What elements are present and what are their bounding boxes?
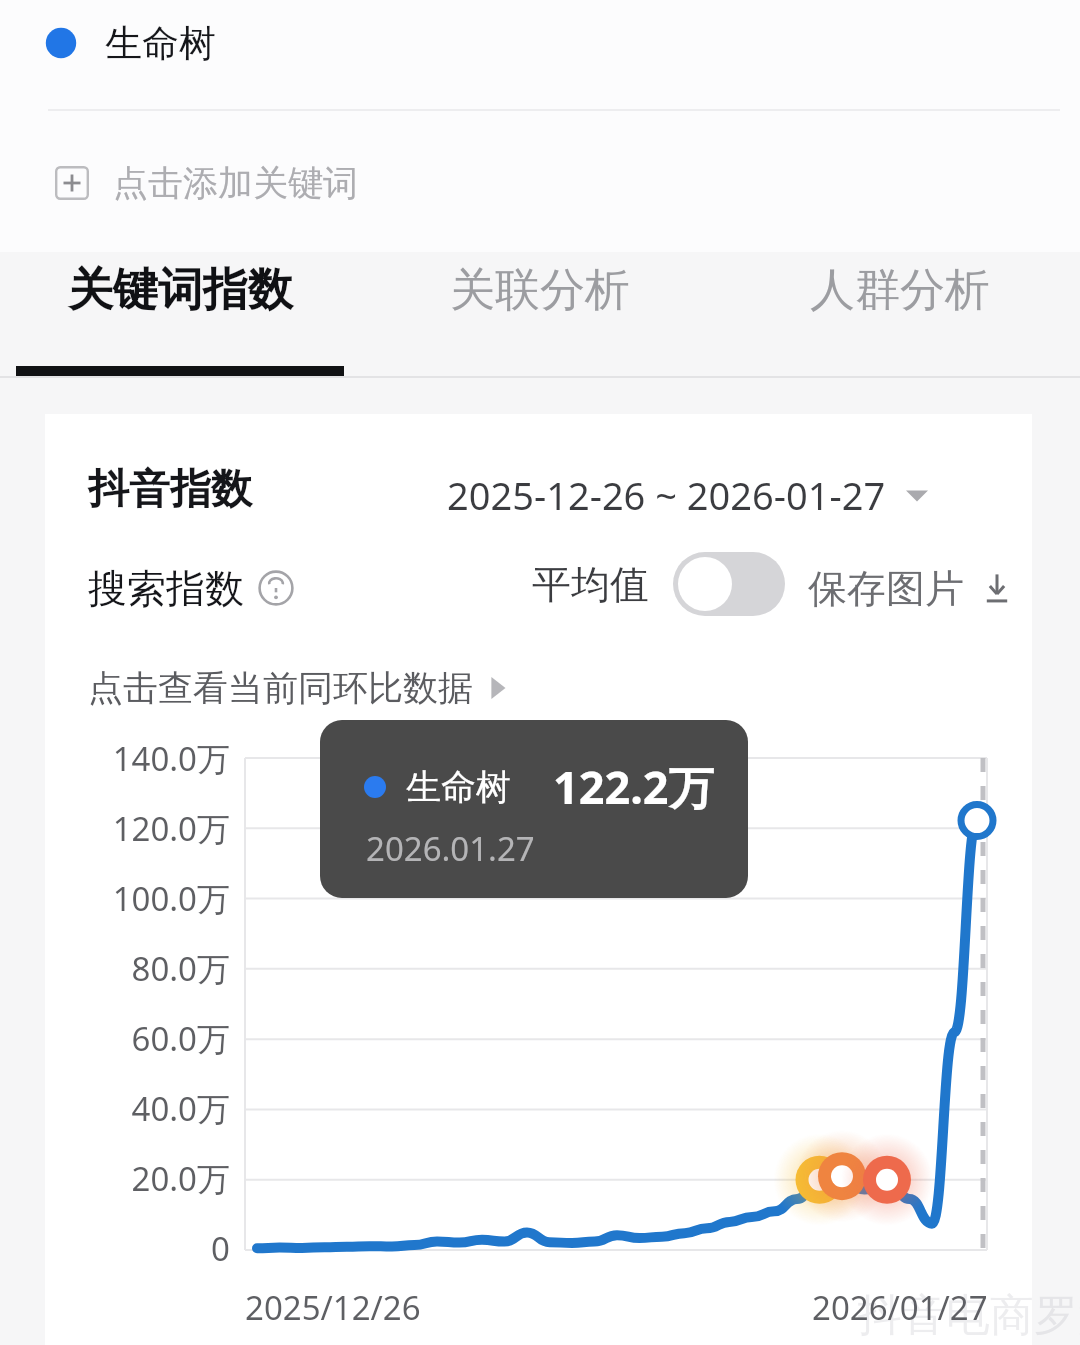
staticText: 关键词指数 — [68, 262, 293, 319]
staticText: 抖音指数 — [88, 464, 252, 516]
other: 保存图片 — [980, 571, 1014, 605]
staticText: 关联分析 — [450, 262, 630, 319]
staticText: 60.0万 — [131, 1016, 230, 1061]
button[interactable]: 保存图片 — [808, 558, 1014, 618]
button[interactable]: 点击添加关键词 — [55, 150, 358, 216]
staticText: 40.0万 — [131, 1086, 230, 1131]
staticText: 保存图片 — [808, 564, 964, 613]
staticText: 生命树 — [406, 765, 511, 809]
button[interactable]: 关键词指数 — [0, 262, 360, 319]
staticText: 80.0万 — [131, 946, 230, 991]
staticText: 0 — [211, 1226, 230, 1271]
staticText: 人群分析 — [810, 262, 990, 319]
staticText: 抖音电商罗盘 — [858, 1288, 1080, 1343]
button[interactable]: 人群分析 — [720, 262, 1080, 319]
staticText: 120.0万 — [112, 806, 230, 851]
button[interactable]: 2025-12-26 ~ 2026-01-27 — [447, 465, 928, 525]
other: 帮助 — [258, 570, 294, 606]
staticText: 2026.01.27 — [366, 826, 535, 871]
staticText: 2026/01/27 — [812, 1285, 988, 1330]
staticText: 平均值 — [532, 560, 649, 609]
button[interactable]: 生命树 — [45, 12, 216, 74]
staticText: 122.2万 — [553, 756, 714, 817]
staticText: 点击添加关键词 — [113, 161, 358, 205]
staticText: 生命树 — [105, 20, 216, 67]
staticText: 2025/12/26 — [245, 1285, 421, 1330]
staticText: 100.0万 — [112, 876, 230, 921]
staticText: 140.0万 — [112, 736, 230, 781]
staticText: 2025-12-26 ~ 2026-01-27 — [447, 469, 886, 521]
staticText: 20.0万 — [131, 1156, 230, 1201]
button[interactable]: 关联分析 — [360, 262, 720, 319]
staticText: 搜索指数 — [88, 564, 244, 613]
staticText: 点击查看当前同环比数据 — [88, 666, 473, 710]
button[interactable]: 搜索指数 — [88, 558, 294, 618]
button[interactable]: 平均值 — [532, 548, 785, 620]
button[interactable]: 点击查看当前同环比数据 — [88, 660, 509, 716]
